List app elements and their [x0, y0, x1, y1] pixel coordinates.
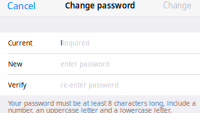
staticText: Cancel — [7, 0, 35, 12]
button[interactable]: Current — [0, 32, 200, 53]
button[interactable]: Cancel — [0, 2, 42, 13]
staticText: re-enter password — [60, 81, 118, 89]
staticText: Your password must be at least 8 charact… — [8, 99, 196, 113]
staticText: Current — [8, 38, 32, 47]
button[interactable]: Verify — [0, 75, 200, 95]
staticText: enter password — [60, 59, 109, 68]
staticText: New — [8, 59, 22, 68]
button[interactable]: New — [0, 54, 200, 74]
staticText: Verify — [8, 81, 26, 89]
button[interactable]: Change — [155, 2, 200, 13]
staticText: Change password — [65, 0, 135, 11]
staticText: Required — [60, 38, 89, 47]
staticText: Change — [163, 0, 192, 11]
